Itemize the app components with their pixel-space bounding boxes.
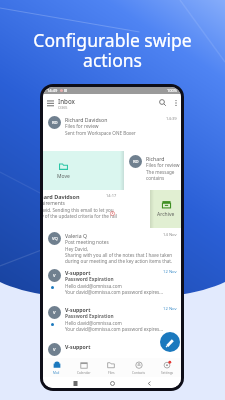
staticText: V: [53, 347, 56, 353]
staticText: 14:49: [47, 88, 58, 93]
button[interactable]: VQ: [43, 228, 181, 265]
staticText: Password Expiration: [65, 313, 114, 320]
button[interactable]: Files: [97, 358, 125, 377]
staticText: Hey David, Sharing with you all of the n…: [65, 246, 173, 264]
staticText: Hi David. Sending this email to let you …: [43, 207, 117, 219]
staticText: Hello david@omnissa.com Your david@omnis…: [65, 283, 163, 295]
staticText: Configurable swipe actions: [0, 28, 225, 72]
button[interactable]: V: [43, 265, 181, 302]
staticText: O365: [58, 105, 68, 110]
button[interactable]: V: [43, 339, 181, 358]
staticText: 100%: [167, 88, 178, 93]
staticText: Files for review: [146, 162, 180, 169]
staticText: 14 Nov: [163, 232, 177, 238]
staticText: Inbox: [58, 97, 75, 105]
button[interactable]: Search: [156, 94, 170, 112]
button[interactable]: Mail: [43, 358, 70, 377]
staticText: V: [53, 310, 56, 316]
button[interactable]: Settings: [153, 358, 181, 377]
staticText: Richard Davidson: [43, 193, 106, 200]
staticText: VQ: [52, 236, 58, 242]
staticText: Post meeting notes: [65, 239, 109, 246]
staticText: Richard Davidson: [146, 155, 181, 162]
button[interactable]: V: [43, 302, 181, 339]
button[interactable]: Calendar: [70, 358, 97, 377]
staticText: Settings: [161, 371, 174, 375]
button[interactable]: More options: [170, 94, 181, 112]
staticText: Files: [108, 371, 115, 375]
button[interactable]: Home: [107, 378, 117, 388]
staticText: V-support: [65, 343, 163, 350]
staticText: 12 Nov: [163, 306, 177, 312]
staticText: Files for review: [65, 123, 99, 130]
button[interactable]: Recents: [70, 378, 80, 388]
staticText: 14:17: [106, 193, 117, 198]
staticText: Richard Davidson: [65, 116, 166, 123]
staticText: Valeria Q: [65, 232, 163, 239]
staticText: 12 Nov: [163, 269, 177, 275]
staticText: Calendar: [77, 371, 91, 375]
button[interactable]: Back: [144, 378, 154, 388]
button[interactable]: Compose mail: [160, 332, 180, 352]
button[interactable]: Contacts: [125, 358, 153, 377]
staticText: V: [53, 273, 56, 279]
staticText: V-support: [65, 306, 163, 313]
staticText: Password Expiration: [65, 276, 114, 283]
staticText: 14:39: [166, 116, 177, 122]
staticText: Archive: [157, 211, 175, 218]
button[interactable]: Navigation menu: [43, 94, 58, 112]
staticText: RD: [52, 120, 58, 126]
staticText: Contacts: [132, 371, 146, 375]
staticText: V-support: [65, 269, 163, 276]
button[interactable]: RD: [124, 151, 181, 190]
staticText: Move: [57, 173, 70, 180]
staticText: 12 Nov: [163, 343, 177, 349]
staticText: RD: [133, 159, 139, 165]
staticText: Sent from Workspace ONE Boxer: [65, 130, 136, 136]
staticText: Mail: [53, 371, 60, 375]
button[interactable]: Richard Davidson: [43, 190, 150, 228]
staticText: The message contains Information Rights: [146, 169, 181, 181]
button[interactable]: RD: [43, 112, 181, 151]
staticText: Requirements: [43, 200, 65, 207]
staticText: Hello david@omnissa.com Your david@omnis…: [65, 320, 163, 332]
